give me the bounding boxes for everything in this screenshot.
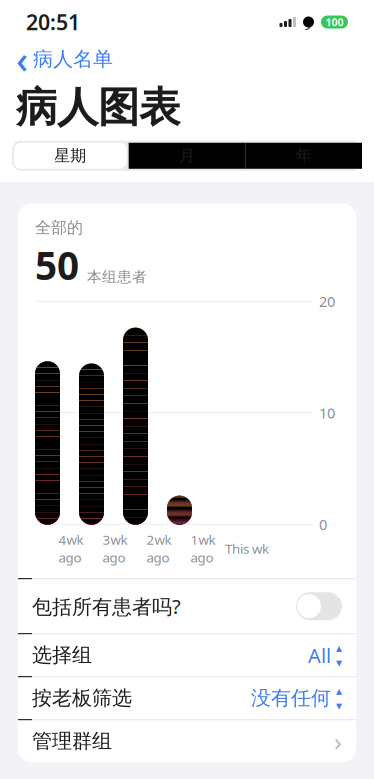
staticText: 10: [319, 403, 335, 422]
staticText: 按老板筛选: [32, 686, 132, 710]
staticText: ◞: [305, 12, 312, 32]
staticText: 20:51: [26, 8, 80, 36]
staticText: 月: [179, 146, 195, 166]
staticText: 管理群组: [32, 729, 112, 753]
staticText: 没有任何: [251, 686, 331, 710]
staticText: 50: [35, 239, 79, 291]
staticText: 本组患者: [87, 268, 147, 286]
staticText: ▾: [336, 656, 342, 669]
staticText: ›: [334, 724, 342, 758]
staticText: 病人名单: [33, 47, 113, 71]
staticText: 星期: [54, 146, 86, 166]
button[interactable]: 包括所有患者吗?: [18, 579, 356, 633]
staticText: ▴: [336, 684, 342, 698]
staticText: 包括所有患者吗?: [32, 593, 181, 619]
staticText: 20: [319, 291, 335, 311]
staticText: ▴: [336, 641, 342, 655]
button[interactable]: 年: [245, 143, 362, 169]
button[interactable]: 月: [129, 143, 245, 169]
staticText: 全部的: [35, 218, 83, 237]
staticText: 2wk ago: [146, 531, 171, 566]
staticText: This wk: [225, 540, 269, 557]
staticText: 选择组: [32, 643, 92, 667]
button[interactable]: 选择组: [18, 634, 356, 676]
staticText: ‹: [16, 34, 28, 84]
button[interactable]: 按老板筛选: [18, 677, 356, 719]
staticText: 病人图表: [16, 82, 180, 133]
staticText: All: [308, 642, 331, 668]
staticText: 3wk ago: [102, 531, 127, 566]
staticText: ▾: [336, 699, 342, 712]
button[interactable]: ‹: [12, 32, 117, 86]
staticText: 100: [325, 15, 343, 29]
staticText: 1wk ago: [190, 531, 215, 566]
button[interactable]: 管理群组: [18, 720, 356, 762]
staticText: 年: [296, 146, 312, 166]
button[interactable]: 星期: [12, 143, 129, 169]
staticText: 0: [319, 514, 327, 534]
staticText: 4wk ago: [58, 531, 83, 566]
